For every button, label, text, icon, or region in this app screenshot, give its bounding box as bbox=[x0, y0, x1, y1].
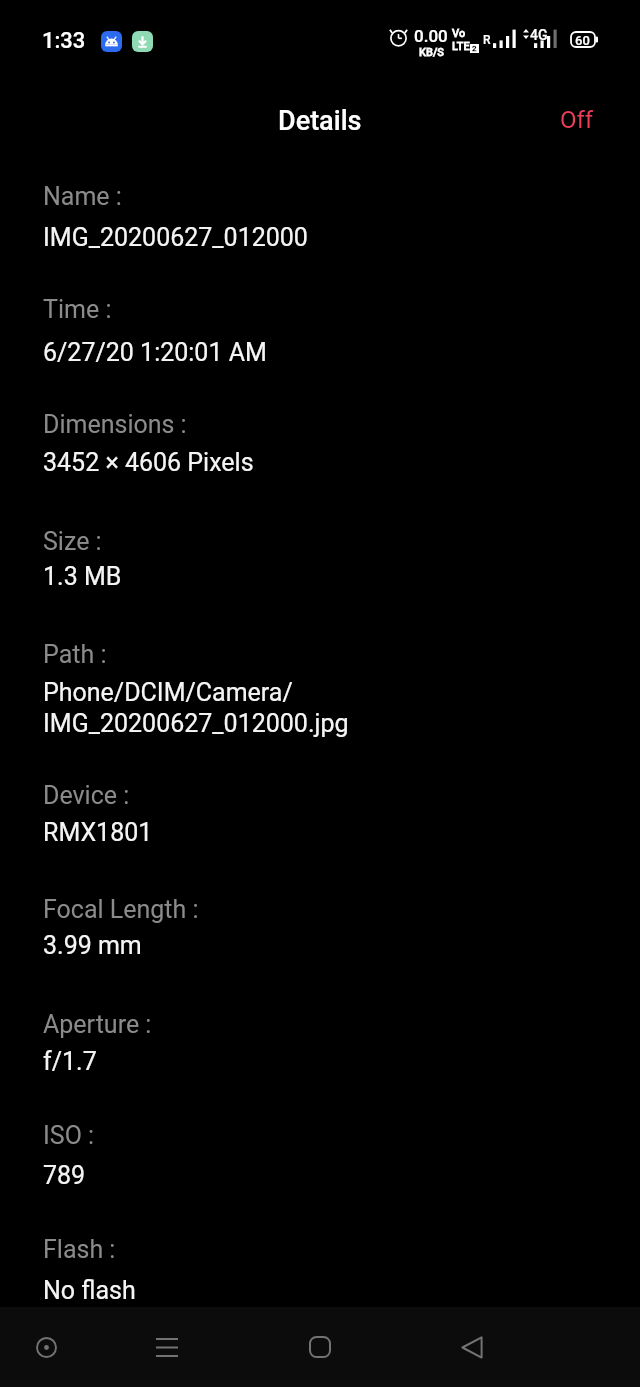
staticText: 2 bbox=[472, 44, 477, 53]
button[interactable]: Recent apps bbox=[140, 1320, 194, 1374]
button[interactable]: Back bbox=[445, 1320, 499, 1374]
staticText: Flash : bbox=[43, 1235, 116, 1264]
staticText: IMG_20200627_012000 bbox=[43, 221, 308, 252]
staticText: Aperture : bbox=[43, 1010, 152, 1039]
button[interactable]: ISO : bbox=[0, 1097, 640, 1211]
button[interactable]: Screen recording bbox=[19, 1320, 73, 1374]
staticText: 789 bbox=[43, 1159, 86, 1190]
button[interactable]: Dimensions : bbox=[0, 386, 640, 503]
button[interactable]: Name : bbox=[0, 158, 640, 271]
button[interactable]: Home bbox=[293, 1320, 347, 1374]
staticText: R bbox=[483, 33, 491, 47]
button[interactable]: Focal Length : bbox=[0, 871, 640, 986]
staticText: Time : bbox=[43, 295, 112, 324]
staticText: RMX1801 bbox=[43, 816, 153, 847]
button[interactable]: Size : bbox=[0, 503, 640, 616]
staticText: KB/S bbox=[419, 46, 444, 59]
staticText: 1.3 MB bbox=[43, 560, 122, 591]
staticText: 3452 × 4606 Pixels bbox=[43, 446, 254, 477]
staticText: Off bbox=[560, 106, 594, 134]
staticText: Focal Length : bbox=[43, 895, 199, 924]
button[interactable]: Off bbox=[533, 94, 640, 146]
staticText: Path : bbox=[43, 640, 107, 669]
staticText: f/1.7 bbox=[43, 1045, 97, 1076]
staticText: Device : bbox=[43, 781, 130, 810]
staticText: Phone/DCIM/Camera/ IMG_20200627_012000.j… bbox=[43, 676, 349, 738]
button[interactable]: Time : bbox=[0, 271, 640, 386]
staticText: Name : bbox=[43, 182, 122, 211]
staticText: 60 bbox=[575, 33, 590, 48]
staticText: LTE bbox=[452, 40, 470, 53]
button[interactable]: Flash : bbox=[0, 1211, 640, 1307]
staticText: No flash bbox=[43, 1274, 136, 1305]
staticText: Size : bbox=[43, 527, 102, 556]
staticText: Details bbox=[278, 105, 362, 137]
staticText: 4G bbox=[530, 27, 548, 43]
staticText: Dimensions : bbox=[43, 410, 187, 439]
staticText: 6/27/20 1:20:01 AM bbox=[43, 336, 267, 367]
staticText: Vo bbox=[452, 27, 466, 40]
staticText: ISO : bbox=[43, 1121, 95, 1150]
staticText: 0.00 bbox=[414, 26, 448, 46]
button[interactable]: Aperture : bbox=[0, 986, 640, 1097]
button[interactable]: Device : bbox=[0, 757, 640, 871]
staticText: 3.99 mm bbox=[43, 929, 142, 960]
staticText: 1:33 bbox=[42, 28, 86, 54]
button[interactable]: Path : bbox=[0, 616, 640, 757]
